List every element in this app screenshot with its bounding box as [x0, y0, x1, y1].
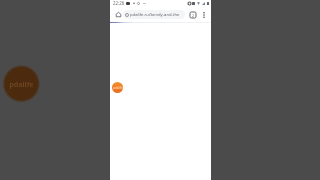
staticText: 2 — [192, 13, 195, 18]
button[interactable]: pdalife logo — [112, 82, 123, 93]
button[interactable]: Switch tabs — [188, 10, 198, 20]
staticText: pdalife.ru/bendy-and-the — [130, 12, 180, 18]
staticText: pdalife — [9, 80, 34, 90]
staticText: pdalife — [113, 86, 123, 90]
staticText: 22:26 — [113, 0, 125, 6]
button[interactable]: pdalife.ru/bendy-and-the — [123, 10, 185, 19]
button[interactable]: Home — [113, 9, 123, 19]
button[interactable]: More options — [199, 10, 208, 19]
